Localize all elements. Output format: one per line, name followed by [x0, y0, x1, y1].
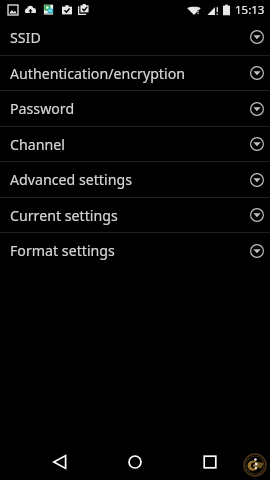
button[interactable]: Channel — [0, 127, 270, 161]
staticText: Channel — [10, 135, 65, 154]
button[interactable]: SSID — [0, 19, 270, 55]
staticText: Format settings — [10, 241, 115, 260]
staticText: 15:13 — [235, 2, 265, 18]
button[interactable]: Authentication/encryption — [0, 56, 270, 90]
button[interactable]: Format settings — [0, 233, 270, 268]
staticText: Password — [10, 99, 75, 118]
button[interactable]: Password — [0, 91, 270, 126]
button[interactable]: Back — [40, 442, 80, 480]
staticText: Authentication/encryption — [10, 64, 185, 83]
button[interactable]: Home — [115, 442, 155, 480]
button[interactable]: Advanced settings — [0, 162, 270, 197]
button[interactable]: Current settings — [0, 198, 270, 232]
staticText: Current settings — [10, 206, 118, 225]
button[interactable]: Recent apps — [190, 442, 230, 480]
staticText: SSID — [10, 28, 41, 47]
staticText: Advanced settings — [10, 170, 132, 189]
